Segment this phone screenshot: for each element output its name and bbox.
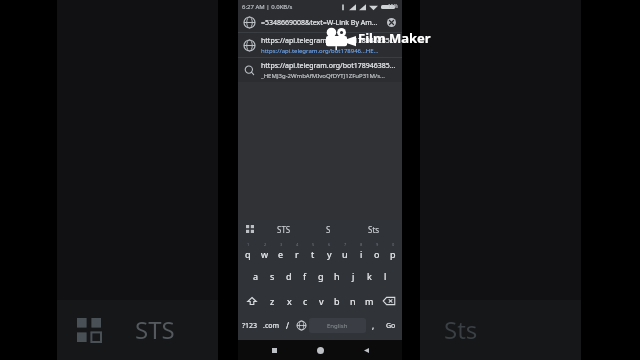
staticText: n <box>350 295 356 307</box>
staticText: 9 <box>376 242 379 247</box>
button[interactable]: Recents <box>264 340 284 360</box>
staticText: w <box>261 248 269 260</box>
button[interactable]: Back <box>356 340 376 360</box>
button[interactable]: STS <box>262 220 306 238</box>
staticText: m <box>365 295 374 307</box>
staticText: https://api.telegram.org/bot1789463850Nj… <box>261 61 396 71</box>
staticText: b <box>334 295 340 307</box>
button[interactable]: .com <box>261 313 281 338</box>
staticText: ?123 <box>242 321 258 331</box>
button[interactable]: https://api.telegram.org/bot17894628500A… <box>238 33 402 57</box>
staticText: t <box>311 248 315 260</box>
staticText: u <box>342 248 348 260</box>
button[interactable]: n <box>345 288 361 313</box>
button[interactable]: s <box>264 263 281 288</box>
button[interactable]: / <box>281 313 294 338</box>
button[interactable]: a <box>247 263 264 288</box>
button[interactable]: 9 <box>369 238 385 263</box>
button[interactable]: Sts <box>351 220 396 238</box>
staticText: i <box>360 248 363 260</box>
staticText: 4 <box>296 242 299 247</box>
button[interactable]: =5348669008&text=W-Link By Ammar Sd <box>238 13 402 32</box>
staticText: x <box>287 295 292 307</box>
staticText: 2 <box>264 242 267 247</box>
button[interactable]: v <box>313 288 329 313</box>
button[interactable]: d <box>281 263 297 288</box>
staticText: o <box>374 248 380 260</box>
button[interactable]: ?123 <box>239 313 261 338</box>
staticText: y <box>327 248 332 260</box>
staticText: S <box>326 224 331 235</box>
button[interactable]: b <box>329 288 345 313</box>
staticText: =5348669008&text=W-Link By Ammar Sd <box>261 18 383 28</box>
staticText: 3 <box>280 242 283 247</box>
button[interactable]: Backspace <box>377 288 401 313</box>
staticText: c <box>303 295 308 307</box>
button[interactable]: h <box>329 263 345 288</box>
button[interactable]: 6 <box>321 238 337 263</box>
staticText: 8 <box>360 242 363 247</box>
button[interactable]: Change language <box>294 313 309 338</box>
staticText: STS <box>135 313 175 346</box>
staticText: Sts <box>444 313 478 346</box>
button[interactable]: m <box>361 288 377 313</box>
staticText: https://api.telegram.org/bot17894628500A… <box>261 36 396 46</box>
button[interactable]: Clear <box>387 18 396 27</box>
staticText: f <box>303 270 307 282</box>
staticText: 0 <box>392 242 395 247</box>
staticText: a <box>253 270 259 282</box>
button[interactable]: 3 <box>273 238 289 263</box>
staticText: / <box>286 320 289 331</box>
button[interactable]: Keyboard options <box>238 220 262 238</box>
button[interactable]: Home <box>310 340 330 360</box>
staticText: Film Maker <box>358 29 431 47</box>
staticText: s <box>270 270 275 282</box>
staticText: r <box>295 248 299 260</box>
button[interactable]: l <box>377 263 393 288</box>
button[interactable]: 8 <box>353 238 369 263</box>
staticText: l <box>384 270 387 282</box>
staticText: https://api.telegram.org/bot178946...HE.… <box>261 47 379 55</box>
button[interactable]: c <box>297 288 313 313</box>
staticText: g <box>318 270 324 282</box>
button[interactable]: English <box>309 318 366 333</box>
staticText: 1 <box>247 242 250 247</box>
staticText: 6:27 AM | 0.0KB/s <box>242 3 293 11</box>
staticText: 7 <box>344 242 347 247</box>
staticText: 5 <box>312 242 315 247</box>
staticText: .com <box>263 321 280 331</box>
staticText: h <box>334 270 340 282</box>
button[interactable]: z <box>264 288 281 313</box>
staticText: English <box>327 322 348 330</box>
button[interactable]: , <box>366 313 381 338</box>
button[interactable]: f <box>297 263 313 288</box>
button[interactable]: Shift <box>239 288 264 313</box>
button[interactable]: 2 <box>256 238 273 263</box>
button[interactable]: 4 <box>289 238 305 263</box>
staticText: e <box>278 248 284 260</box>
staticText: STS <box>277 224 291 235</box>
button[interactable]: S <box>306 220 351 238</box>
button[interactable]: Go <box>381 313 401 338</box>
staticText: _HEMJ3g-2WmbAfMIvoQfDYTJ1ZFuP31M/s... <box>261 72 385 80</box>
staticText: , <box>372 320 375 331</box>
button[interactable]: 1 <box>239 238 256 263</box>
staticText: q <box>245 248 251 260</box>
staticText: Go <box>386 321 396 331</box>
staticText: k <box>367 270 372 282</box>
button[interactable]: 0 <box>385 238 401 263</box>
staticText: p <box>390 248 396 260</box>
button[interactable]: g <box>313 263 329 288</box>
staticText: 15% <box>388 3 398 10</box>
button[interactable]: 7 <box>337 238 353 263</box>
staticText: v <box>319 295 324 307</box>
button[interactable]: j <box>345 263 361 288</box>
button[interactable]: k <box>361 263 377 288</box>
staticText: z <box>270 295 275 307</box>
button[interactable]: 5 <box>305 238 321 263</box>
button[interactable]: x <box>281 288 297 313</box>
button[interactable]: https://api.telegram.org/bot1789463850Nj… <box>238 58 402 82</box>
staticText: d <box>286 270 292 282</box>
staticText: 6 <box>328 242 331 247</box>
staticText: Sts <box>368 224 380 235</box>
